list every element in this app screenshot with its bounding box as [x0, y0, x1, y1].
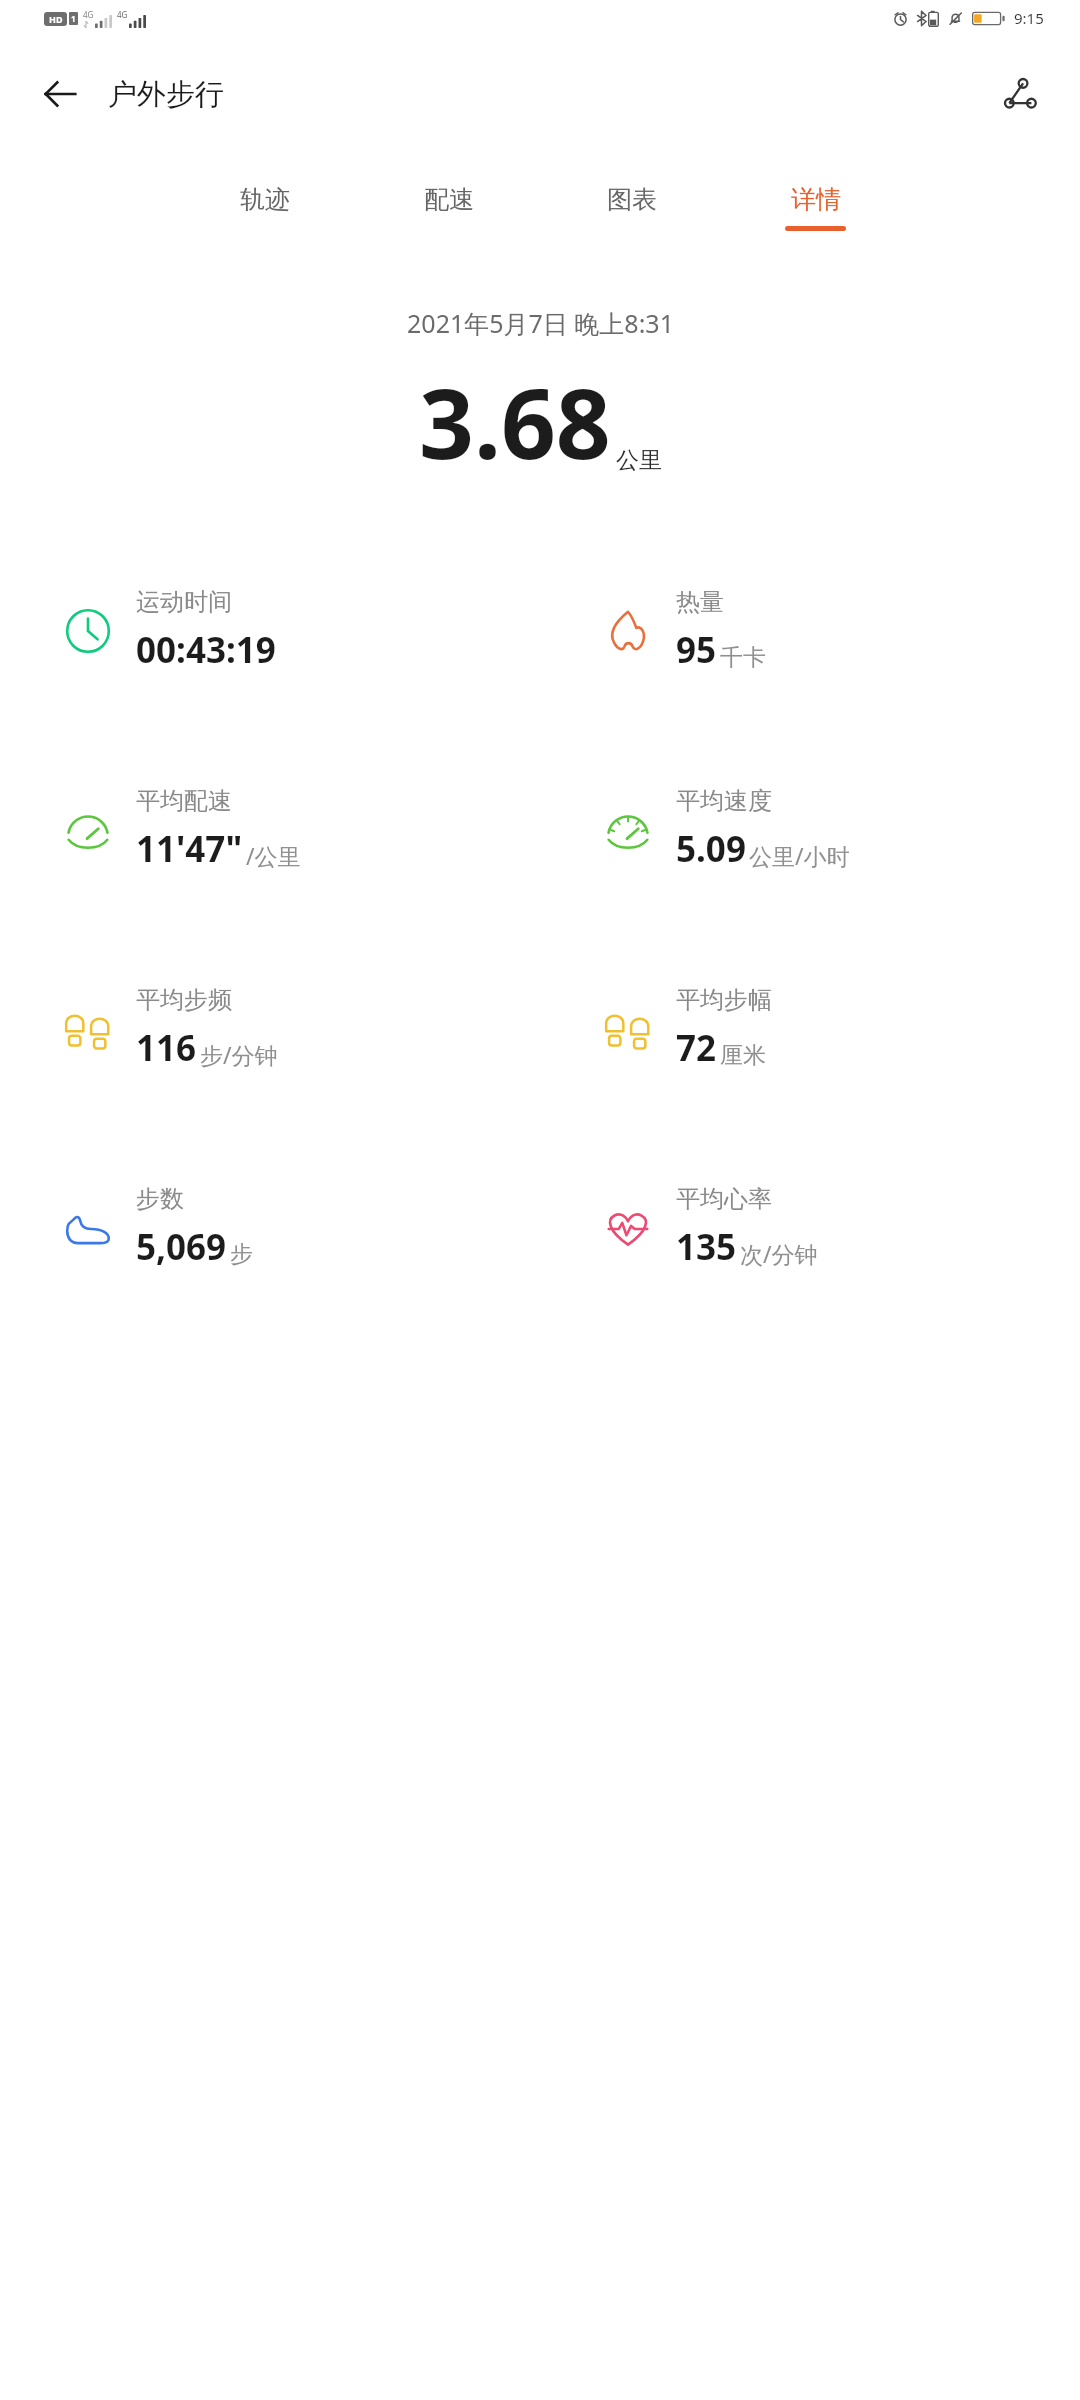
staticText: 轨迹: [240, 184, 290, 215]
button[interactable]: 平均步幅: [540, 929, 1080, 1128]
staticText: 5.09: [676, 825, 746, 873]
staticText: 步数: [136, 1184, 184, 1214]
staticText: 图表: [607, 184, 657, 215]
staticText: 热量: [676, 587, 724, 617]
staticText: 4G: [117, 9, 128, 20]
button[interactable]: 热量: [540, 531, 1080, 730]
staticText: 1: [71, 13, 76, 24]
button[interactable]: 图表: [597, 176, 666, 239]
staticText: 公里/小时: [749, 840, 850, 871]
staticText: 公里: [616, 446, 662, 475]
staticText: 3.68: [419, 356, 611, 487]
button[interactable]: Share: [986, 60, 1054, 128]
staticText: 次/分钟: [740, 1238, 818, 1269]
button[interactable]: 运动时间: [0, 531, 540, 730]
staticText: 4G: [83, 9, 94, 20]
staticText: HD: [49, 13, 63, 25]
button[interactable]: 平均心率: [540, 1128, 1080, 1327]
button[interactable]: 平均速度: [540, 730, 1080, 929]
staticText: 2021年5月7日 晚上8:31: [407, 306, 674, 340]
staticText: 11'47": [136, 825, 243, 873]
staticText: 95: [676, 626, 717, 674]
staticText: 5,069: [136, 1223, 227, 1271]
button[interactable]: 平均步频: [0, 929, 540, 1128]
staticText: 配速: [424, 184, 474, 215]
staticText: 步/分钟: [200, 1039, 278, 1070]
staticText: 步: [230, 1240, 253, 1269]
button[interactable]: 详情: [781, 176, 850, 239]
button[interactable]: 步数: [0, 1128, 540, 1327]
button[interactable]: 轨迹: [230, 176, 299, 239]
staticText: 9:15: [1014, 8, 1044, 28]
staticText: 00:43:19: [136, 626, 276, 674]
staticText: 平均速度: [676, 786, 772, 816]
button[interactable]: 平均配速: [0, 730, 540, 929]
staticText: 平均步频: [136, 985, 232, 1015]
staticText: 72: [676, 1024, 717, 1072]
staticText: 平均配速: [136, 786, 232, 816]
staticText: 厘米: [720, 1041, 766, 1070]
staticText: 运动时间: [136, 587, 232, 617]
staticText: 135: [676, 1223, 737, 1271]
staticText: 千卡: [720, 643, 766, 672]
button[interactable]: 配速: [414, 176, 483, 239]
staticText: 平均步幅: [676, 985, 772, 1015]
button[interactable]: Back: [26, 60, 94, 128]
staticText: 116: [136, 1024, 197, 1072]
staticText: 详情: [791, 184, 841, 215]
staticText: 户外步行: [108, 76, 224, 113]
staticText: /公里: [246, 840, 301, 871]
staticText: 平均心率: [676, 1184, 772, 1214]
